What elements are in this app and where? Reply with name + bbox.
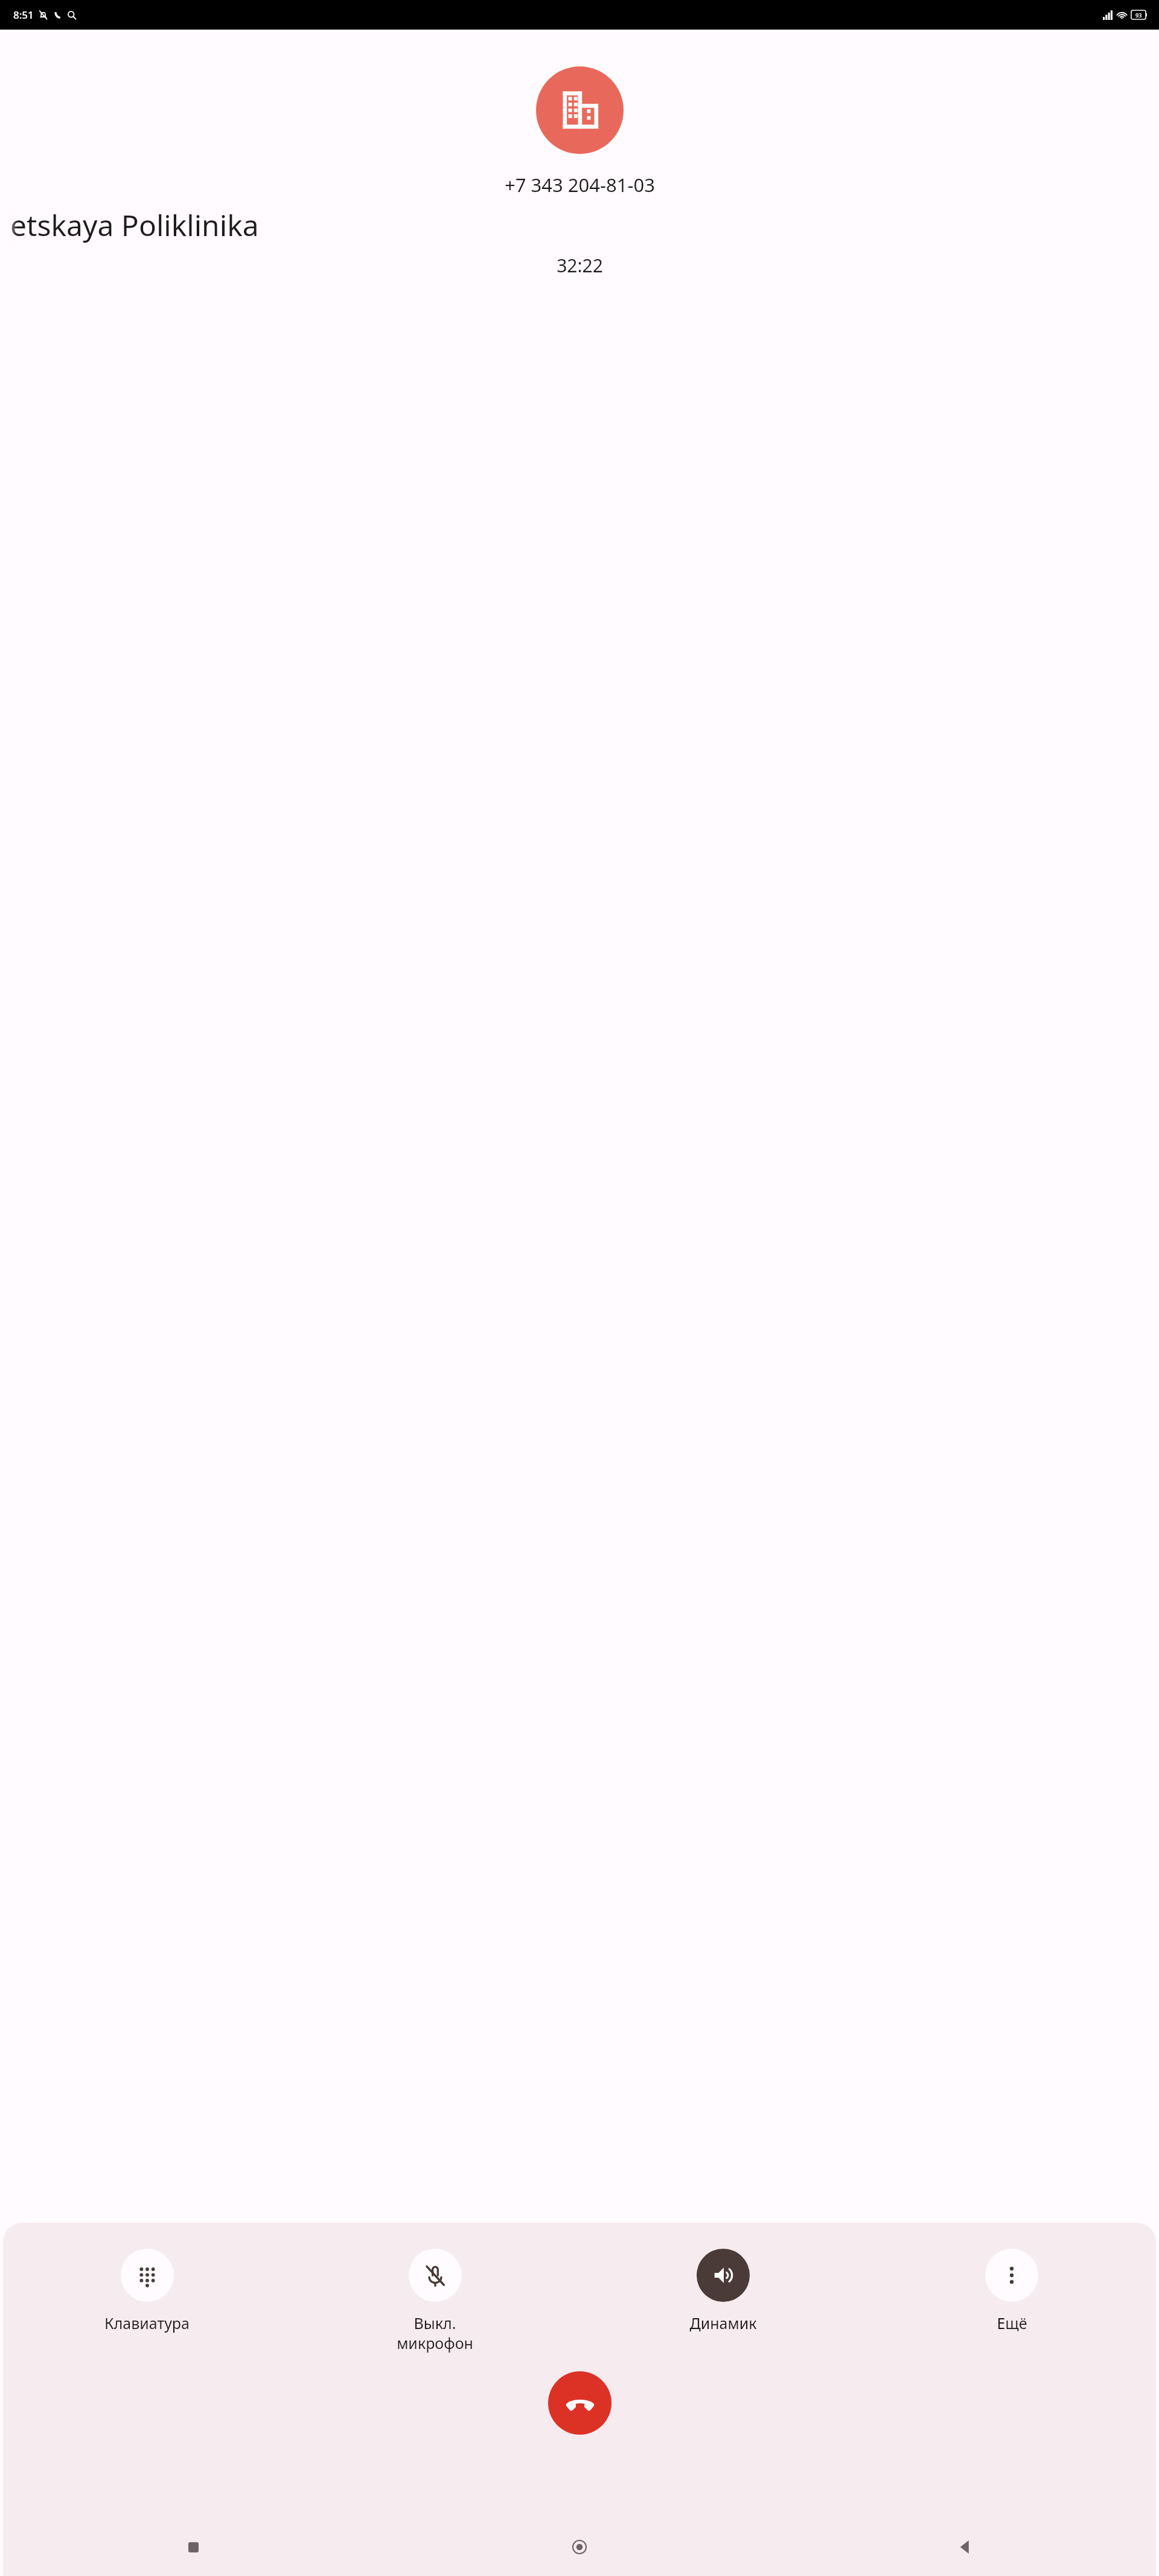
staticText: etskaya Poliklinika [10,205,259,245]
other: Keypad [121,2249,174,2302]
staticText: +7 343 204-81-03 [505,172,655,197]
staticText: Клавиатура [104,2313,190,2333]
button[interactable]: More options [867,2249,1156,2333]
button[interactable]: End call [548,2371,611,2435]
button[interactable]: Speaker [579,2249,867,2333]
staticText: Ещё [997,2313,1027,2333]
staticText: 32:22 [557,253,603,278]
button[interactable]: Mute microphone [291,2249,579,2353]
staticText: 93 [1135,11,1142,19]
other: More options [985,2249,1038,2302]
staticText: 8:51 [13,8,34,22]
button[interactable]: Back [945,2526,986,2568]
button[interactable]: Recent apps [173,2526,214,2568]
other: Mute microphone [409,2249,462,2302]
staticText: Динамик [689,2313,757,2333]
button[interactable]: Home [559,2526,600,2568]
staticText: Выкл. микрофон [397,2313,473,2353]
button[interactable]: Keypad [3,2249,291,2333]
other: Speaker [697,2249,750,2302]
